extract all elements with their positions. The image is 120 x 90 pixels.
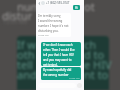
staticText: By now hopefully did the wrong number	[43, 68, 72, 76]
button[interactable]: Back	[37, 1, 41, 5]
staticText: If we don't know each other. Then I woul…	[43, 43, 75, 66]
staticText: 12:05 AM	[38, 33, 49, 36]
staticText: d to	[84, 47, 105, 62]
staticText: ch	[84, 37, 97, 52]
staticText: If w	[17, 37, 37, 52]
button[interactable]: By now hopefully did the wrong number	[41, 67, 81, 80]
staticText: numb	[17, 0, 48, 14]
staticText: and	[17, 67, 37, 82]
staticText: tell	[17, 57, 33, 72]
button[interactable]: If we don't know each other. Then I woul…	[41, 42, 81, 66]
staticText: oth	[17, 47, 35, 62]
button[interactable]: I'm terribly sorry, I saved the wrong nu…	[37, 13, 71, 37]
staticText: e HIV	[84, 57, 112, 72]
staticText: 12:06 AM	[69, 76, 80, 79]
staticText: ot	[84, 0, 95, 14]
staticText: +1 (602) 555-0147	[46, 1, 70, 5]
staticText: nt to	[84, 67, 109, 82]
staticText: distur	[2, 8, 33, 23]
button[interactable]: Hi	[73, 5, 80, 10]
staticText: 12:05 AM	[3, 18, 27, 25]
button[interactable]: Send	[77, 83, 82, 88]
staticText: I'm terribly sorry, I saved the wrong nu…	[38, 14, 69, 33]
staticText: Hi	[75, 6, 78, 10]
